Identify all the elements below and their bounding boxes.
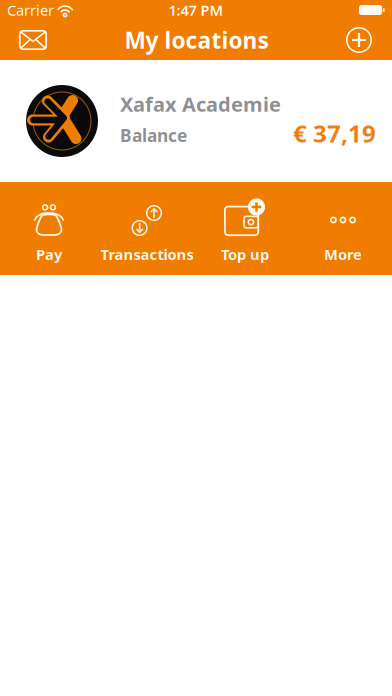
staticText: Transactions xyxy=(100,244,193,264)
staticText: More xyxy=(324,244,362,264)
staticText: Pay xyxy=(36,244,62,264)
button[interactable]: Transactions xyxy=(98,182,196,275)
staticText: 1:47 PM xyxy=(168,0,223,20)
button[interactable]: Add location xyxy=(338,21,392,59)
staticText: Carrier xyxy=(7,0,54,20)
staticText: My locations xyxy=(124,25,268,55)
staticText: € 37,19 xyxy=(293,117,376,149)
staticText: Top up xyxy=(221,244,269,264)
button[interactable]: Top up xyxy=(196,182,294,275)
button[interactable]: Pay xyxy=(0,182,98,275)
staticText: Balance xyxy=(120,124,187,147)
button[interactable]: Messages xyxy=(0,21,55,59)
button[interactable]: Xafax Academie xyxy=(0,60,392,182)
staticText: Xafax Academie xyxy=(120,91,281,117)
button[interactable]: More xyxy=(294,182,392,275)
